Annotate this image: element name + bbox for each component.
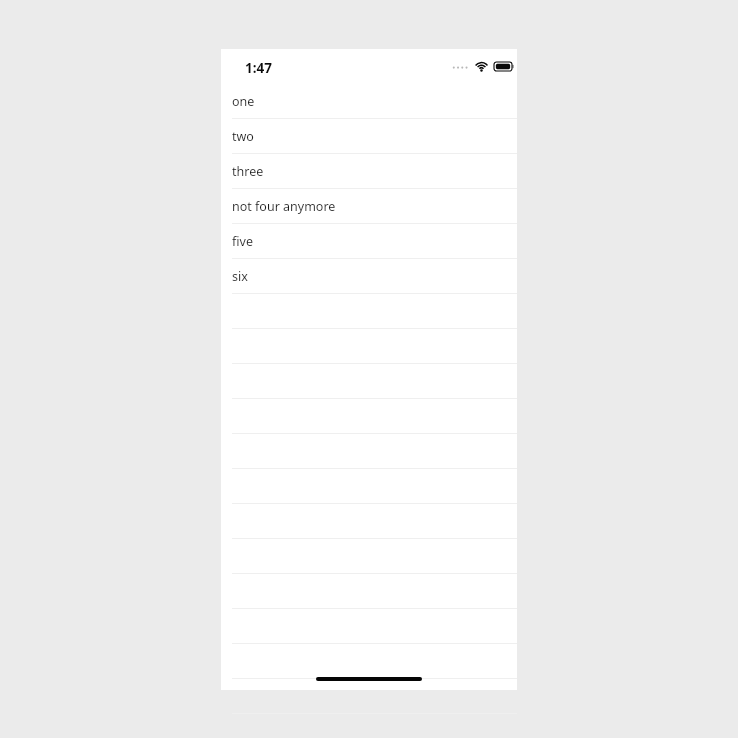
other: Home indicator <box>316 677 422 681</box>
staticText: 1:47 <box>245 59 272 77</box>
button[interactable]: two <box>221 119 517 154</box>
staticText: one <box>232 93 255 110</box>
button[interactable]: five <box>221 224 517 259</box>
button[interactable]: three <box>221 154 517 189</box>
staticText: six <box>232 268 248 285</box>
staticText: not four anymore <box>232 198 336 215</box>
staticText: five <box>232 233 253 250</box>
button[interactable]: not four anymore <box>221 189 517 224</box>
button[interactable]: six <box>221 259 517 294</box>
button[interactable]: one <box>221 84 517 119</box>
staticText: three <box>232 163 264 180</box>
staticText: two <box>232 128 254 145</box>
